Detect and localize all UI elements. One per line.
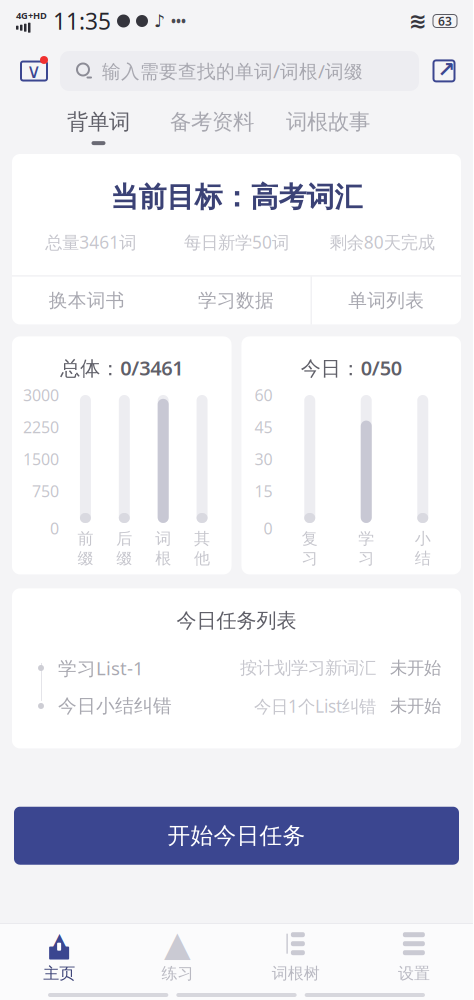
staticText: 习 [302, 549, 318, 568]
button[interactable]: ▲ [118, 924, 237, 990]
staticText: 2250 [23, 416, 59, 437]
staticText: 结 [415, 549, 431, 568]
button[interactable]: ▲ [0, 924, 118, 990]
staticText: 今日1个List纠错 [254, 694, 376, 717]
button[interactable]: 词根树 [236, 924, 355, 990]
staticText: 总量3461词 [45, 230, 136, 253]
staticText: 单词列表 [348, 289, 424, 312]
button[interactable]: 输入需要查找的单词/词根/词缀 [60, 51, 419, 91]
staticText: ≋ [409, 9, 427, 33]
staticText: 换本词书 [49, 289, 125, 312]
staticText: 0 [50, 518, 59, 539]
staticText: 63 [438, 13, 452, 29]
button[interactable]: 设置 [355, 924, 473, 990]
staticText: 小 [415, 529, 431, 549]
button[interactable]: 背单词 [67, 109, 130, 145]
staticText: 练习 [161, 964, 193, 983]
staticText: 学习List-1 [58, 656, 144, 680]
staticText: 主页 [43, 964, 75, 983]
staticText: 开始今日任务 [167, 822, 305, 850]
button[interactable]: 今日小结纠错 [12, 687, 461, 725]
staticText: 根 [155, 549, 171, 568]
staticText: 每日新学50词 [184, 230, 289, 253]
staticText: 备考资料 [170, 109, 254, 135]
staticText: 缀 [77, 549, 93, 568]
staticText: 前 [77, 529, 93, 549]
staticText: 总体：0/3461 [60, 354, 183, 381]
staticText: ∨ [26, 60, 41, 82]
button[interactable]: 学习数据 [161, 276, 311, 324]
staticText: 按计划学习新词汇 [240, 657, 376, 679]
staticText: 输入需要查找的单词/词根/词缀 [102, 59, 363, 83]
staticText: 750 [32, 480, 59, 501]
staticText: 习 [358, 549, 374, 568]
staticText: ♪ [154, 11, 165, 31]
button[interactable]: 单词列表 [312, 276, 461, 324]
staticText: 11:35 [53, 6, 111, 36]
staticText: 学 [358, 529, 374, 549]
staticText: ↗ [437, 57, 455, 82]
staticText: 学习数据 [198, 289, 274, 312]
staticText: 30 [254, 448, 272, 469]
staticText: 4G+HD [16, 9, 47, 22]
staticText: 复 [302, 529, 318, 549]
staticText: 今日任务列表 [176, 608, 296, 633]
staticText: 今日：0/50 [301, 354, 402, 381]
staticText: 词 [155, 529, 171, 549]
staticText: ▲ [164, 924, 191, 963]
staticText: 词根故事 [286, 109, 370, 135]
button[interactable]: 备考资料 [170, 109, 254, 145]
staticText: 后 [116, 529, 132, 549]
button[interactable]: 学习List-1 [12, 649, 461, 687]
staticText: 当前目标：高考词汇 [110, 180, 362, 214]
staticText: 45 [254, 416, 272, 437]
staticText: 背单词 [67, 109, 130, 135]
staticText: 未开始 [390, 657, 441, 679]
staticText: 缀 [116, 549, 132, 568]
staticText: ••• [171, 12, 186, 30]
staticText: 60 [254, 384, 272, 405]
staticText: 15 [254, 480, 272, 501]
button[interactable]: Messages [14, 49, 54, 93]
staticText: 设置 [398, 964, 430, 983]
staticText: 剩余80天完成 [330, 230, 435, 253]
button[interactable]: 开始今日任务 [14, 807, 459, 865]
staticText: 词根树 [272, 964, 320, 983]
staticText: 未开始 [390, 695, 441, 717]
staticText: 3000 [23, 384, 59, 405]
button[interactable]: 词根故事 [286, 109, 370, 145]
staticText: 1500 [23, 448, 59, 469]
staticText: ▲ [51, 928, 68, 953]
staticText: 0 [263, 518, 272, 539]
staticText: 他 [194, 549, 210, 568]
staticText: 其 [194, 529, 210, 549]
staticText: 今日小结纠错 [58, 694, 172, 717]
button[interactable]: 换本词书 [12, 276, 161, 324]
button[interactable]: Share [429, 54, 459, 88]
